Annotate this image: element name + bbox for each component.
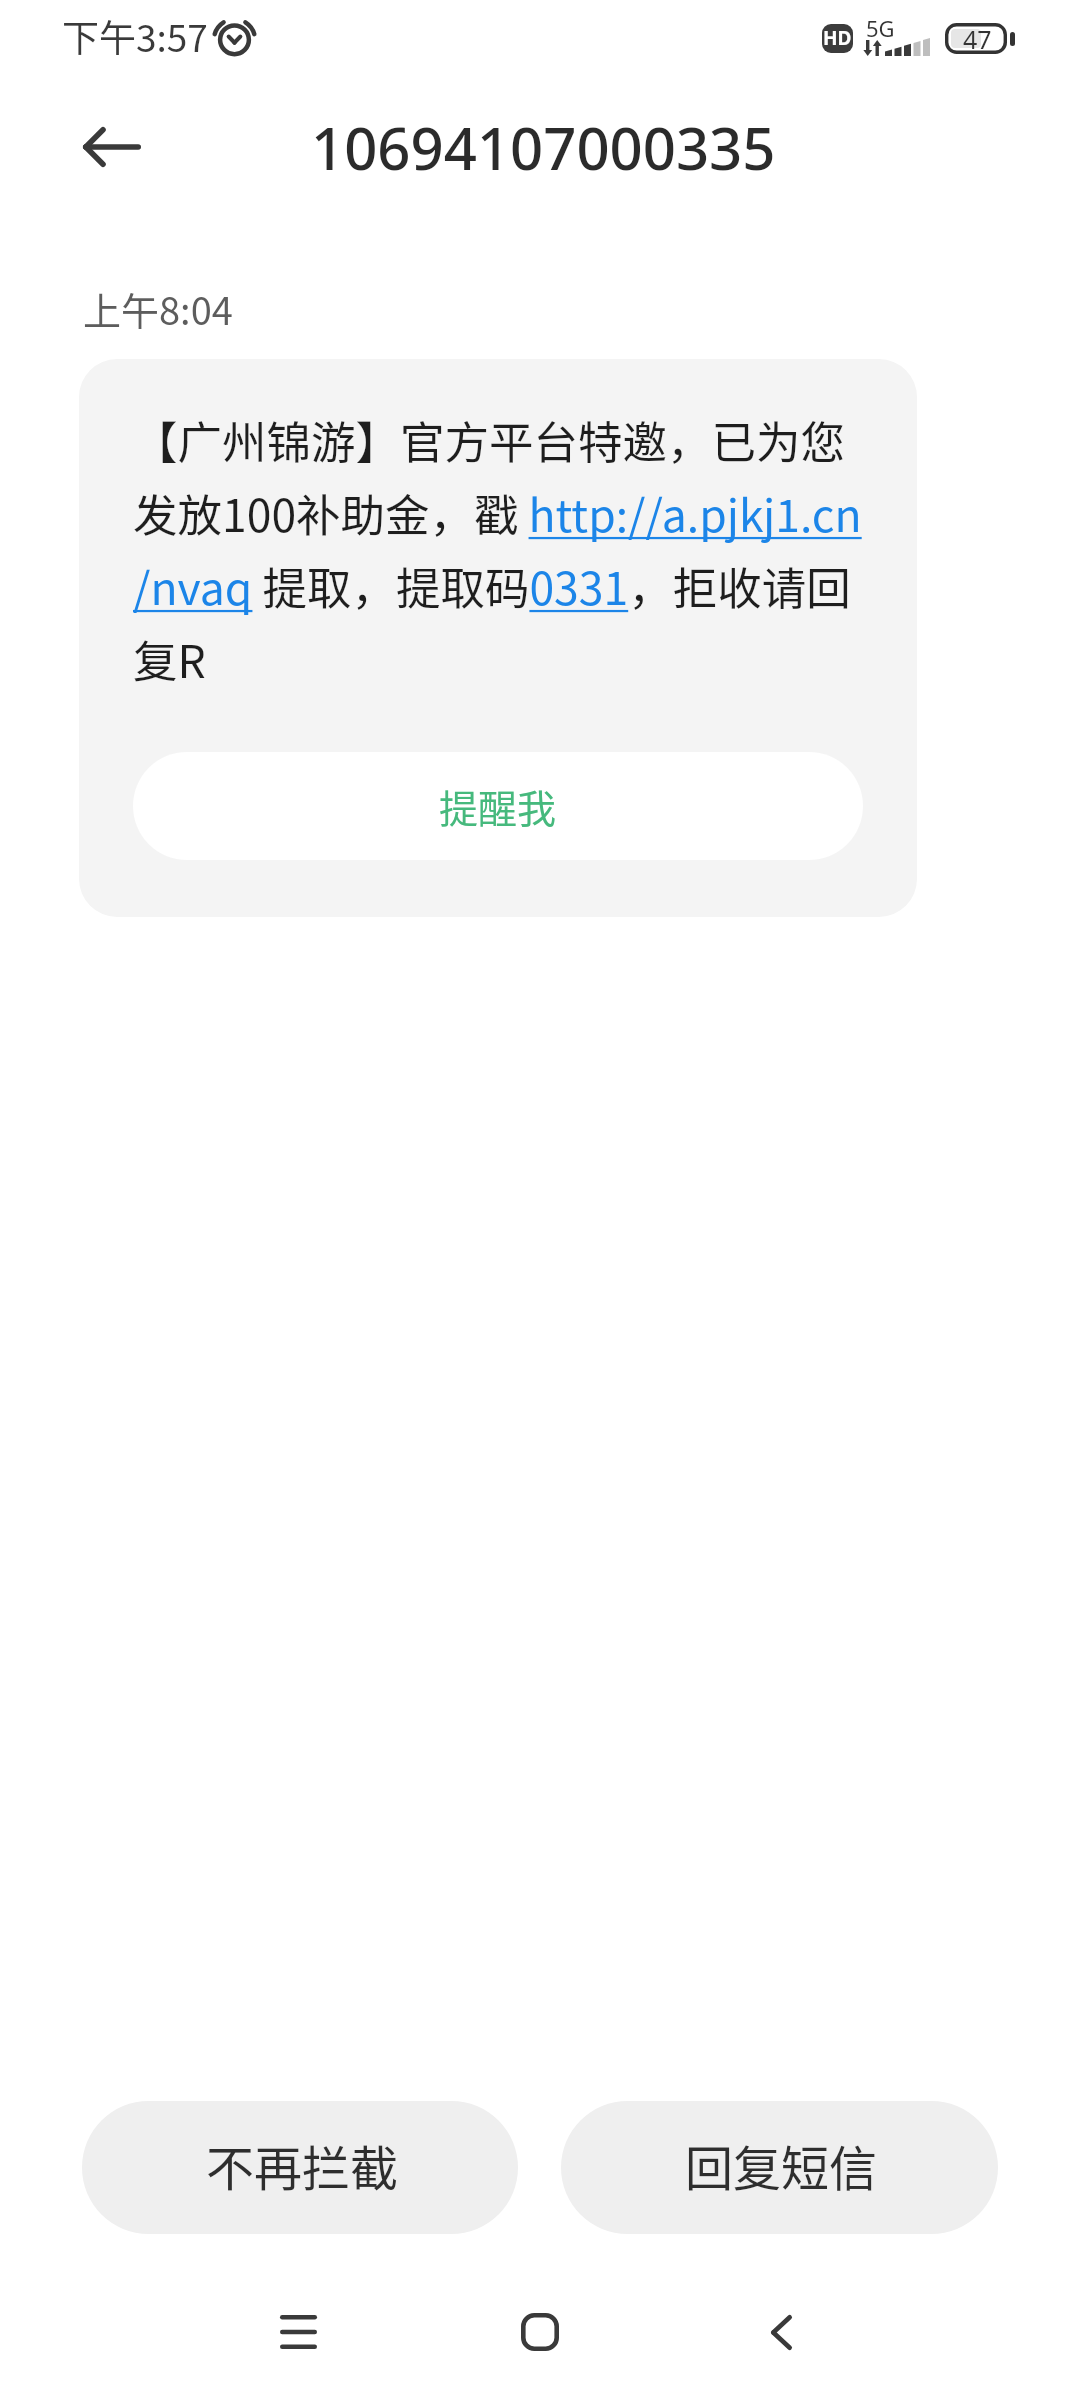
staticText: 下午3:57 (62, 9, 208, 63)
staticText: 回复短信 (685, 2130, 878, 2200)
button[interactable]: Back (721, 2295, 841, 2369)
button[interactable]: Home (480, 2295, 600, 2369)
staticText: HD (823, 25, 852, 51)
button[interactable]: 【广州锦游】官方平台特邀，已为您 发放100补助金，戳 http://a.pjk… (79, 359, 917, 917)
button[interactable]: Back (76, 111, 148, 183)
staticText: 47 (963, 22, 992, 53)
staticText: 10694107000335 (311, 108, 776, 187)
button[interactable]: 提醒我 (133, 752, 863, 860)
staticText: 不再拦截 (206, 2130, 399, 2200)
staticText: 【广州锦游】官方平台特邀，已为您 发放100补助金，戳 http://a.pjk… (133, 401, 862, 693)
staticText: 5G (866, 13, 895, 43)
staticText: 提醒我 (439, 778, 557, 834)
staticText: 上午8:04 (83, 281, 233, 336)
button[interactable]: 不再拦截 (82, 2101, 518, 2234)
button[interactable]: Recent apps (238, 2295, 358, 2369)
button[interactable]: 回复短信 (561, 2101, 998, 2234)
